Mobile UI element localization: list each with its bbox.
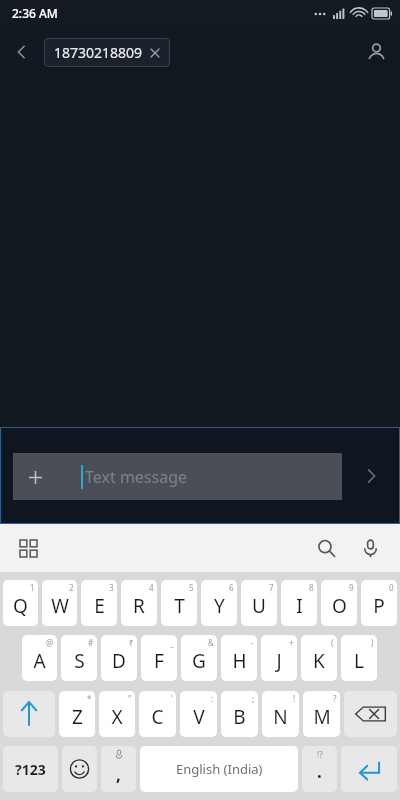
staticText: 3	[109, 582, 114, 593]
button[interactable]: ,	[101, 746, 136, 792]
button[interactable]: !?	[302, 746, 337, 792]
staticText: I	[296, 593, 303, 619]
staticText: *	[87, 693, 92, 704]
staticText: &	[208, 637, 214, 648]
button[interactable]: )	[341, 635, 377, 681]
button[interactable]: 0	[361, 580, 397, 626]
staticText: 2	[69, 582, 74, 593]
staticText: Y	[214, 593, 225, 619]
staticText: ?	[333, 693, 337, 704]
staticText: ,	[116, 763, 121, 786]
staticText: :	[211, 693, 214, 704]
button[interactable]: Send	[342, 450, 400, 502]
staticText: 6	[229, 582, 234, 593]
button[interactable]: "	[99, 691, 135, 737]
button[interactable]: 6	[201, 580, 237, 626]
button[interactable]: 7	[241, 580, 277, 626]
staticText: J	[276, 648, 282, 674]
button[interactable]: 5	[161, 580, 197, 626]
staticText: .	[317, 760, 322, 783]
button[interactable]: '	[139, 691, 176, 737]
button[interactable]: @	[22, 635, 57, 681]
button[interactable]: ?123	[3, 746, 58, 792]
staticText: H	[232, 648, 247, 674]
staticText: X	[111, 704, 123, 730]
staticText: #	[88, 637, 94, 648]
button[interactable]: +	[261, 635, 297, 681]
staticText: ₹	[129, 637, 134, 648]
staticText: V	[193, 704, 205, 730]
staticText: 1	[30, 582, 35, 593]
button[interactable]: #	[61, 635, 97, 681]
button[interactable]: Backspace	[344, 691, 397, 737]
button[interactable]: 3	[81, 580, 117, 626]
button[interactable]: &	[181, 635, 217, 681]
button[interactable]: Shift	[3, 691, 55, 737]
button[interactable]: ₹	[101, 635, 137, 681]
button[interactable]: (	[301, 635, 337, 681]
staticText: 2:36 AM	[12, 5, 58, 21]
staticText: F	[154, 648, 164, 674]
staticText: M	[313, 704, 331, 730]
staticText: P	[373, 593, 385, 619]
staticText: N	[273, 704, 288, 730]
staticText: L	[354, 648, 364, 674]
staticText: 5	[189, 582, 194, 593]
button[interactable]: _	[141, 635, 177, 681]
button[interactable]: Emoji	[62, 746, 97, 792]
button[interactable]: Voice input	[348, 526, 392, 570]
button[interactable]: ?	[303, 691, 340, 737]
button[interactable]: 8	[281, 580, 317, 626]
button[interactable]: 2	[42, 580, 77, 626]
button[interactable]: Attach	[13, 453, 342, 500]
staticText: R	[133, 593, 145, 619]
staticText: (	[331, 637, 334, 648]
staticText: 7	[269, 582, 274, 593]
staticText: @	[46, 637, 54, 648]
staticText: Q	[13, 593, 28, 619]
button[interactable]: 18730218809	[44, 38, 170, 67]
button[interactable]: Keyboard modes	[8, 528, 48, 568]
staticText: !?	[317, 749, 323, 760]
staticText: 4	[149, 582, 154, 593]
button[interactable]: :	[180, 691, 217, 737]
button[interactable]: -	[221, 635, 257, 681]
button[interactable]: *	[59, 691, 95, 737]
button[interactable]: !	[262, 691, 299, 737]
button[interactable]: 9	[321, 580, 357, 626]
staticText: -	[251, 637, 254, 648]
button[interactable]: 1	[3, 580, 38, 626]
button[interactable]: Back	[0, 30, 44, 74]
button[interactable]: Attach	[13, 455, 57, 499]
staticText: A	[33, 648, 46, 674]
staticText: ;	[252, 693, 255, 704]
staticText: +	[289, 637, 294, 648]
staticText: E	[94, 593, 105, 619]
staticText: English (India)	[176, 760, 263, 778]
staticText: B	[233, 704, 246, 730]
staticText: 18730218809	[54, 43, 143, 62]
staticText: O	[332, 593, 347, 619]
staticText: Z	[72, 704, 83, 730]
button[interactable]: Enter	[341, 746, 397, 792]
staticText: )	[371, 637, 374, 648]
button[interactable]: Contact details	[352, 28, 400, 76]
button[interactable]: English (India)	[140, 746, 298, 792]
staticText: '	[171, 693, 173, 704]
staticText: "	[128, 693, 132, 704]
staticText: 9	[349, 582, 354, 593]
button[interactable]: ;	[221, 691, 258, 737]
staticText: Text message	[85, 466, 188, 488]
staticText: U	[252, 593, 266, 619]
staticText: D	[112, 648, 126, 674]
staticText: _	[170, 637, 174, 648]
staticText: T	[174, 593, 185, 619]
staticText: 0	[389, 582, 394, 593]
staticText: G	[192, 648, 206, 674]
button[interactable]: 4	[121, 580, 157, 626]
staticText: C	[151, 704, 164, 730]
button[interactable]: Search	[304, 526, 348, 570]
staticText: S	[74, 648, 85, 674]
staticText: ?123	[15, 760, 46, 779]
staticText: K	[313, 648, 325, 674]
